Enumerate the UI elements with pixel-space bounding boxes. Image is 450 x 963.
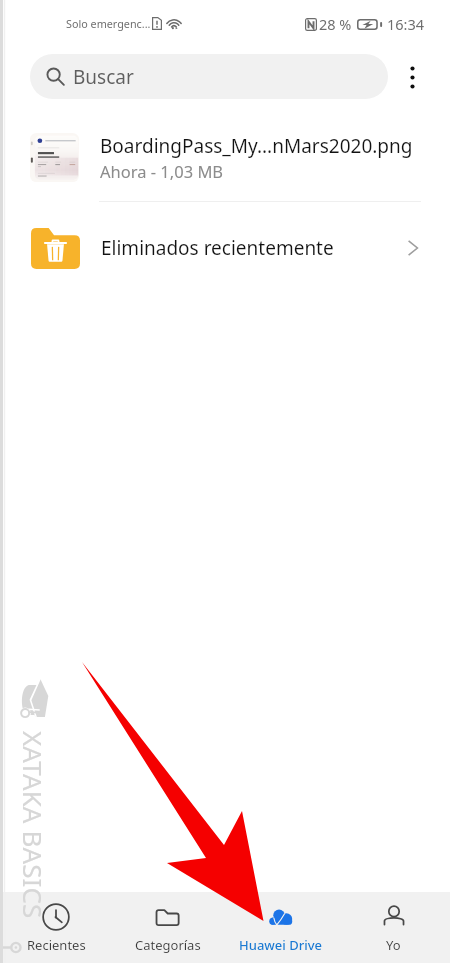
- button[interactable]: Categorías: [112, 892, 224, 963]
- staticText: BoardingPass_My...nMars2020.png: [100, 133, 413, 159]
- button[interactable]: Buscar: [30, 54, 388, 99]
- button[interactable]: Eliminados recientemente: [0, 202, 450, 294]
- staticText: XATAKA BASICS: [16, 731, 51, 919]
- staticText: Recientes: [27, 936, 86, 954]
- button[interactable]: Yo: [337, 892, 450, 963]
- staticText: Yo: [386, 936, 401, 954]
- button[interactable]: Recientes: [0, 892, 112, 963]
- staticText: Solo emergenc...: [66, 16, 151, 31]
- staticText: 16:34: [387, 14, 425, 34]
- staticText: Eliminados recientemente: [101, 235, 334, 261]
- staticText: Buscar: [73, 64, 134, 90]
- button[interactable]: Huawei Drive: [224, 892, 337, 963]
- staticText: Categorías: [135, 936, 201, 954]
- staticText: Huawei Drive: [239, 936, 322, 954]
- button[interactable]: BoardingPass_My...nMars2020.png: [0, 114, 450, 201]
- staticText: Ahora - 1,03 MB: [100, 160, 224, 182]
- staticText: 28 %: [319, 14, 352, 34]
- button[interactable]: More options: [391, 56, 433, 98]
